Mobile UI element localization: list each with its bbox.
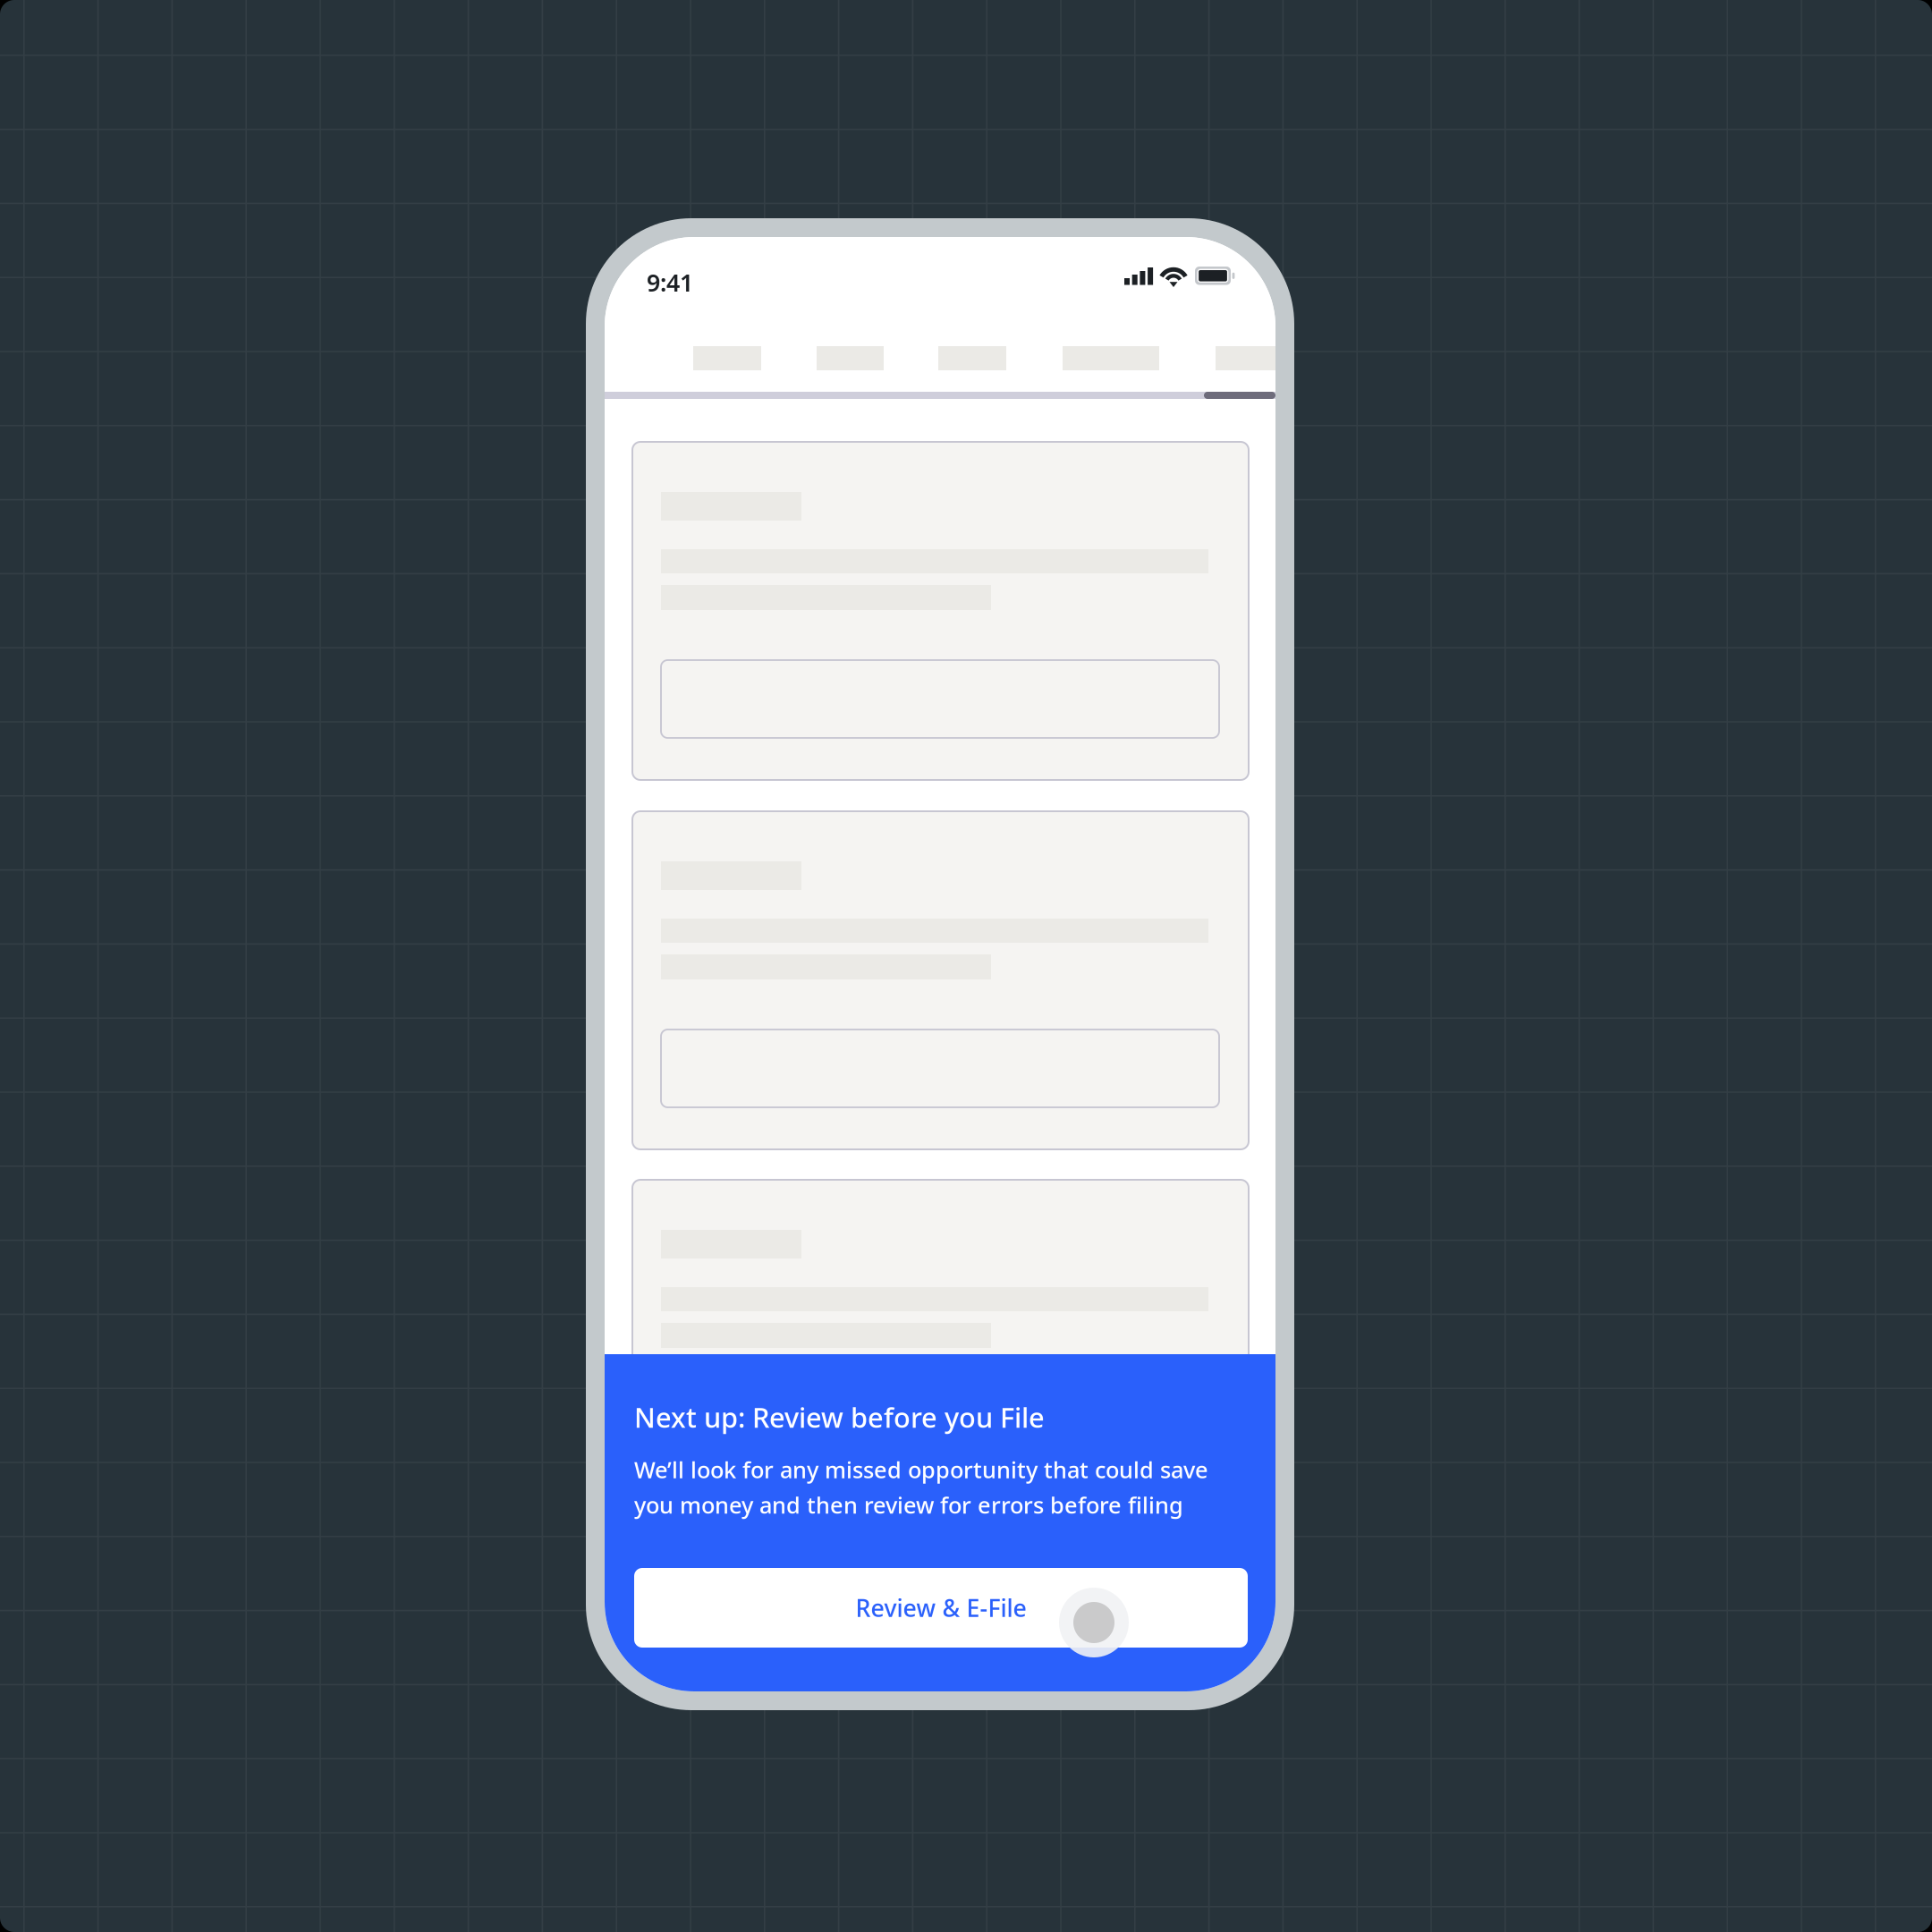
button[interactable]: Answer field [661, 1398, 1219, 1476]
staticText: We’ll look for any missed opportunity th… [634, 1454, 1208, 1484]
button[interactable]: Answer field [661, 1030, 1219, 1107]
staticText: you money and then review for errors bef… [634, 1490, 1183, 1520]
staticText: Review & E-File [856, 1592, 1026, 1624]
button[interactable]: Answer field [661, 660, 1219, 738]
button[interactable]: Section 2 [817, 346, 884, 370]
staticText: 9:41 [647, 267, 693, 298]
button[interactable]: Section 1 [693, 346, 761, 370]
button[interactable]: Review & E-File [634, 1568, 1248, 1648]
button[interactable]: Section 4 [1063, 346, 1159, 370]
button[interactable]: Section 5 [1216, 346, 1275, 370]
button[interactable]: Section 3 [938, 346, 1006, 370]
staticText: Next up: Review before you File [634, 1399, 1045, 1435]
